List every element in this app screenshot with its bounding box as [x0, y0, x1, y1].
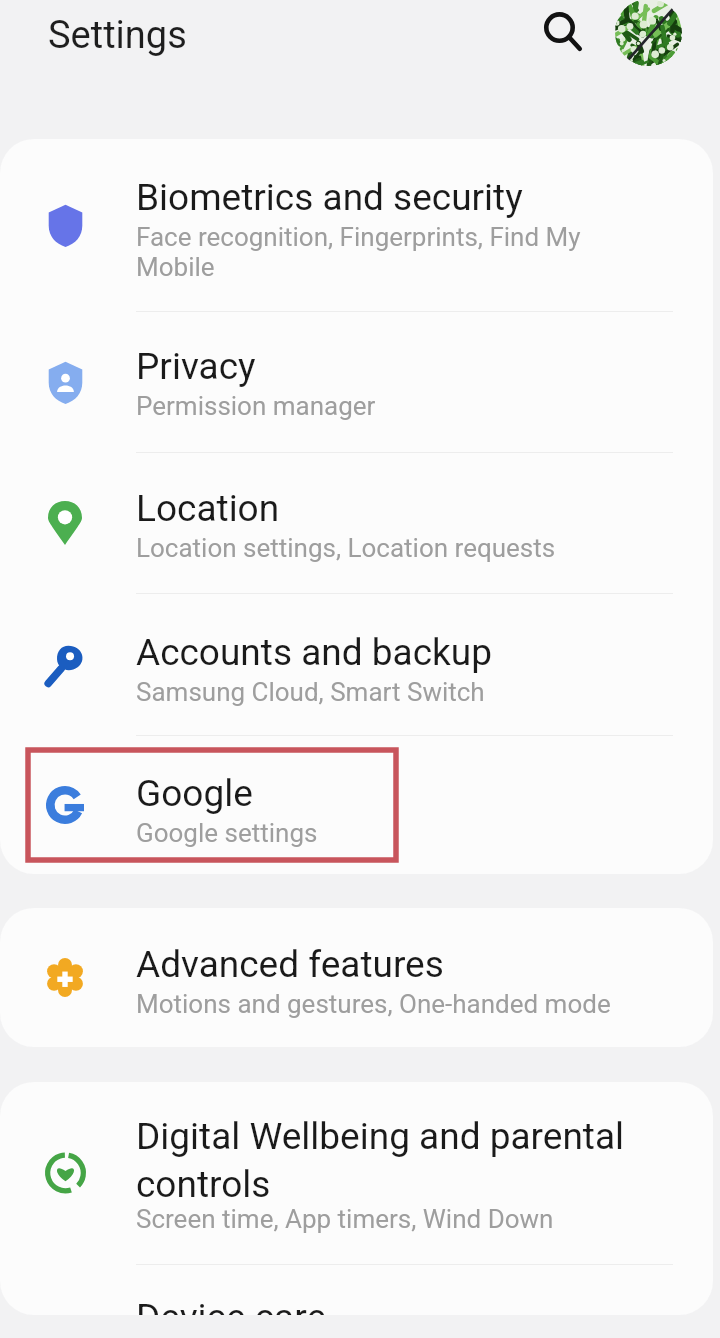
staticText: Google settings: [136, 818, 318, 848]
staticText: Biometrics and security: [136, 176, 523, 219]
button[interactable]: Biometrics and security: [0, 139, 713, 312]
staticText: Permission manager: [136, 391, 376, 421]
staticText: Screen time, App timers, Wind Down: [136, 1204, 554, 1234]
staticText: Location settings, Location requests: [136, 533, 556, 563]
staticText: Location: [136, 487, 280, 530]
staticText: Accounts and backup: [136, 631, 492, 674]
staticText: Samsung Cloud, Smart Switch: [136, 677, 485, 707]
staticText: Advanced features: [136, 943, 444, 986]
staticText: Digital Wellbeing and parental controls: [136, 1115, 641, 1206]
staticText: Motions and gestures, One-handed mode: [136, 989, 611, 1019]
button[interactable]: Account: [615, 0, 682, 66]
button[interactable]: Accounts and backup: [0, 594, 713, 736]
staticText: Privacy: [136, 345, 256, 388]
staticText: Google: [136, 772, 253, 815]
button[interactable]: Digital Wellbeing and parental controls: [0, 1082, 713, 1265]
button[interactable]: Privacy: [0, 312, 713, 453]
button[interactable]: Search: [523, 0, 603, 72]
button[interactable]: Location: [0, 453, 713, 594]
staticText: Face recognition, Fingerprints, Find My …: [136, 222, 641, 282]
button[interactable]: Google: [0, 736, 713, 874]
staticText: Settings: [48, 13, 187, 58]
button[interactable]: Advanced features: [0, 908, 713, 1047]
staticText: Device care: [136, 1296, 327, 1315]
